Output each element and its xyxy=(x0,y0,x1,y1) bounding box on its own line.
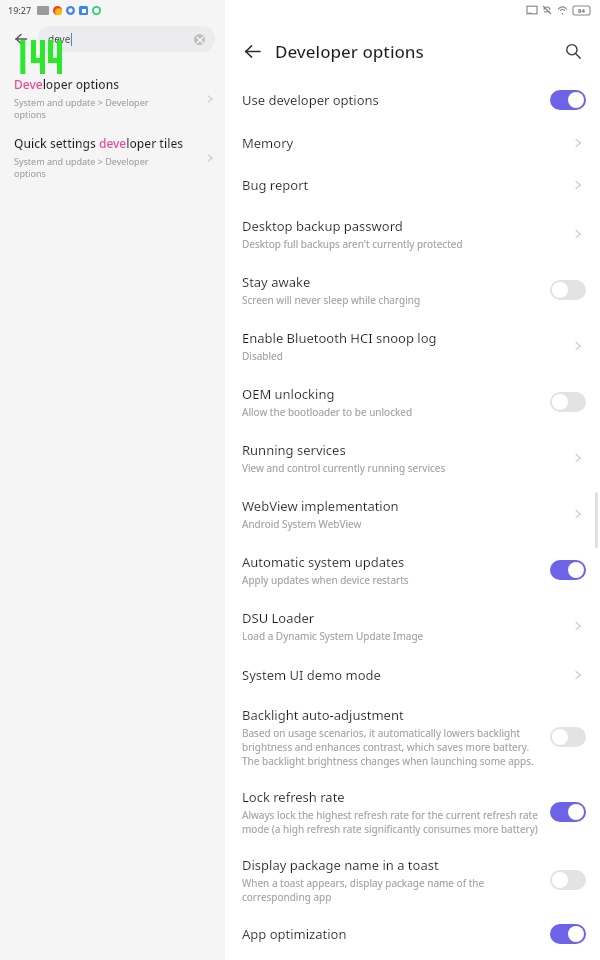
button[interactable]: Lock refresh rate xyxy=(225,778,600,846)
button[interactable]: Use developer options xyxy=(225,82,600,122)
button[interactable]: Back xyxy=(239,38,265,64)
staticText: Always lock the highest refresh rate for… xyxy=(242,808,540,836)
button[interactable]: Toggle on xyxy=(550,560,586,580)
button[interactable]: DSU Loader xyxy=(225,598,600,654)
staticText: 19:27 xyxy=(8,4,32,16)
staticText: Screen will never sleep while charging xyxy=(242,293,421,307)
staticText: Based on usage scenarios, it automatical… xyxy=(242,726,540,768)
staticText: Apply updates when device restarts xyxy=(242,573,409,587)
button[interactable]: Toggle off xyxy=(550,392,586,412)
button[interactable]: Developer options xyxy=(0,76,225,121)
staticText: Desktop backup password xyxy=(242,217,403,235)
staticText: Stay awake xyxy=(242,273,311,291)
staticText: Developer options xyxy=(14,76,120,92)
staticText: Backlight auto-adjustment xyxy=(242,706,404,724)
staticText: Use developer options xyxy=(242,91,379,109)
button[interactable]: Bug report xyxy=(225,164,600,206)
button[interactable]: Toggle on xyxy=(550,802,586,822)
button[interactable]: Running services xyxy=(225,430,600,486)
staticText: Developer options xyxy=(275,40,424,63)
staticText: 84 xyxy=(578,7,585,15)
button[interactable]: Toggle on xyxy=(550,924,586,944)
staticText: Automatic system updates xyxy=(242,553,405,571)
button[interactable]: Search xyxy=(560,38,586,64)
staticText: WebView implementation xyxy=(242,497,399,515)
button[interactable]: Enable Bluetooth HCI snoop log xyxy=(225,318,600,374)
button[interactable]: Back xyxy=(10,28,32,50)
staticText: Lock refresh rate xyxy=(242,788,345,806)
button[interactable]: Backlight auto-adjustment xyxy=(225,696,600,778)
button[interactable]: Display package name in a toast xyxy=(225,846,600,914)
staticText: DSU Loader xyxy=(242,609,315,627)
button[interactable]: WebView implementation xyxy=(225,486,600,542)
button[interactable]: Toggle on xyxy=(550,90,586,110)
button[interactable]: OEM unlocking xyxy=(225,374,600,430)
staticText: View and control currently running servi… xyxy=(242,461,446,475)
staticText: Desktop full backups aren't currently pr… xyxy=(242,237,463,251)
button[interactable]: Automatic system updates xyxy=(225,542,600,598)
staticText: deve xyxy=(48,32,71,46)
button[interactable]: System UI demo mode xyxy=(225,654,600,696)
staticText: Bug report xyxy=(242,176,309,194)
staticText: Display package name in a toast xyxy=(242,856,439,874)
staticText: Android System WebView xyxy=(242,517,362,531)
staticText: Enable Bluetooth HCI snoop log xyxy=(242,329,437,347)
staticText: OEM unlocking xyxy=(242,385,335,403)
staticText: Allow the bootloader to be unlocked xyxy=(242,405,413,419)
staticText: Disabled xyxy=(242,349,283,363)
staticText: System and update > Developer options xyxy=(14,155,149,180)
button[interactable]: deve xyxy=(38,26,215,52)
button[interactable]: Toggle off xyxy=(550,280,586,300)
button[interactable]: Toggle off xyxy=(550,870,586,890)
staticText: Running services xyxy=(242,441,346,459)
staticText: Quick settings developer tiles xyxy=(14,135,184,151)
button[interactable]: App optimization xyxy=(225,914,600,954)
button[interactable]: Stay awake xyxy=(225,262,600,318)
button[interactable]: Clear xyxy=(194,34,205,45)
button[interactable]: Memory xyxy=(225,122,600,164)
staticText: When a toast appears, display package na… xyxy=(242,876,540,904)
staticText: System UI demo mode xyxy=(242,666,381,684)
button[interactable]: Toggle off xyxy=(550,727,586,747)
staticText: System and update > Developer options xyxy=(14,96,149,121)
staticText: Memory xyxy=(242,134,294,152)
staticText: Load a Dynamic System Update Image xyxy=(242,629,424,643)
button[interactable]: Desktop backup password xyxy=(225,206,600,262)
staticText: App optimization xyxy=(242,925,347,943)
button[interactable]: Quick settings developer tiles xyxy=(0,135,225,180)
